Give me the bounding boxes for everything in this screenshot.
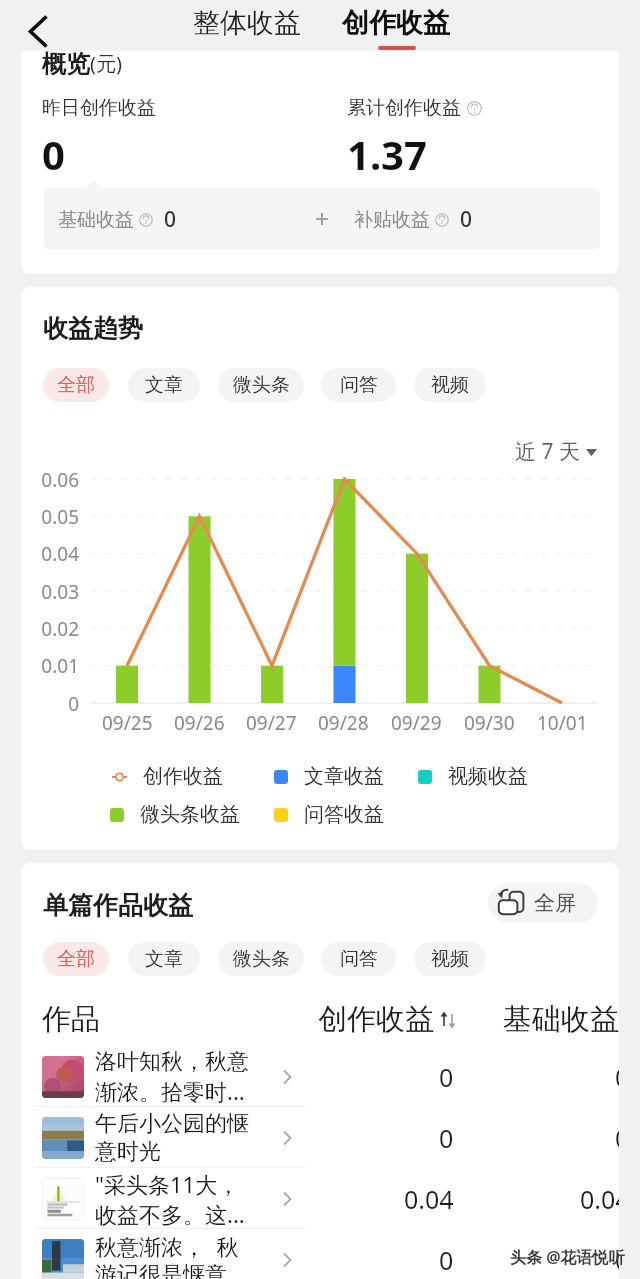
- staticText: 0.04: [580, 1182, 619, 1216]
- staticText: 创作收益: [318, 1001, 434, 1038]
- staticText: 0.05: [41, 504, 79, 528]
- staticText: 意时光: [95, 1138, 161, 1166]
- staticText: 昨日创作收益: [42, 96, 156, 120]
- staticText: 全屏: [534, 890, 576, 916]
- staticText: 头条 @花语悦听: [510, 1246, 625, 1268]
- staticText: 问答收益: [304, 802, 384, 827]
- staticText: 0: [164, 205, 177, 234]
- button[interactable]: 全部: [43, 942, 109, 976]
- button[interactable]: 文章: [128, 368, 200, 402]
- staticText: 渐浓。拾零时...: [95, 1076, 245, 1106]
- staticText: 0: [68, 691, 79, 715]
- staticText: 10/01: [537, 710, 588, 736]
- staticText: 0.03: [41, 579, 79, 603]
- staticText: 文章: [145, 373, 183, 397]
- staticText: 文章: [145, 947, 183, 971]
- staticText: 洛叶知秋，秋意: [95, 1048, 249, 1076]
- button[interactable]: 创作收益: [330, 4, 462, 42]
- staticText: 累计创作收益: [347, 96, 461, 120]
- staticText: 0: [439, 1243, 454, 1277]
- staticText: 基础收益: [58, 208, 134, 232]
- staticText: 创作收益: [342, 6, 450, 40]
- staticText: 0.04: [41, 541, 79, 565]
- staticText: 09/27: [246, 710, 297, 736]
- staticText: 0.02: [41, 616, 79, 640]
- staticText: 基础收益: [503, 1001, 619, 1038]
- staticText: 创作收益: [143, 764, 223, 789]
- staticText: 概览: [42, 51, 90, 79]
- staticText: 0: [42, 127, 65, 181]
- button[interactable]: 洛叶知秋，秋意: [21, 1046, 619, 1107]
- button[interactable]: 问答: [321, 942, 396, 976]
- staticText: 收益趋势: [43, 313, 143, 344]
- staticText: 0: [615, 1121, 619, 1155]
- staticText: 游记很是惬意: [95, 1261, 227, 1279]
- staticText: 微头条: [233, 373, 290, 397]
- button[interactable]: 秋意渐浓， 秋: [21, 1229, 619, 1279]
- staticText: 秋意渐浓， 秋: [95, 1231, 239, 1261]
- button[interactable]: 微头条: [218, 368, 304, 402]
- button[interactable]: Back: [16, 9, 60, 53]
- staticText: "采头条11大，: [95, 1169, 240, 1199]
- staticText: 全部: [57, 373, 95, 397]
- staticText: 作品: [42, 1001, 100, 1038]
- button[interactable]: 近 7 天: [511, 433, 601, 470]
- button[interactable]: 视频: [414, 942, 486, 976]
- staticText: 全部: [57, 947, 95, 971]
- staticText: 收益不多。这...: [95, 1199, 245, 1229]
- staticText: 09/25: [102, 710, 153, 736]
- staticText: 文章收益: [304, 764, 384, 789]
- staticText: 视频: [431, 947, 469, 971]
- staticText: 微头条: [233, 947, 290, 971]
- staticText: 问答: [340, 373, 378, 397]
- staticText: 视频收益: [448, 764, 528, 789]
- staticText: 近 7 天: [515, 437, 580, 466]
- staticText: 补贴收益: [354, 208, 430, 232]
- staticText: 09/28: [318, 710, 369, 736]
- button[interactable]: 午后小公园的惬: [21, 1107, 619, 1168]
- staticText: 09/29: [391, 710, 442, 736]
- staticText: 微头条收益: [140, 802, 240, 827]
- button[interactable]: "采头条11大，: [21, 1168, 619, 1229]
- staticText: 单篇作品收益: [43, 890, 193, 921]
- staticText: 问答: [340, 947, 378, 971]
- button[interactable]: 全屏: [488, 883, 598, 923]
- staticText: 0: [460, 205, 473, 234]
- staticText: 1.37: [347, 127, 427, 181]
- staticText: 0.01: [41, 653, 79, 677]
- button[interactable]: 问答: [321, 368, 396, 402]
- staticText: 0: [439, 1060, 454, 1094]
- staticText: 0.04: [404, 1182, 454, 1216]
- button[interactable]: 文章: [128, 942, 200, 976]
- staticText: 0.06: [41, 467, 79, 491]
- staticText: 0: [615, 1243, 619, 1277]
- staticText: 09/26: [174, 710, 225, 736]
- staticText: (元): [90, 51, 122, 77]
- button[interactable]: 整体收益: [181, 4, 313, 42]
- button[interactable]: 视频: [414, 368, 486, 402]
- staticText: 0: [615, 1060, 619, 1094]
- button[interactable]: 微头条: [218, 942, 304, 976]
- staticText: 09/30: [464, 710, 515, 736]
- staticText: 视频: [431, 373, 469, 397]
- staticText: 整体收益: [193, 6, 301, 40]
- staticText: 午后小公园的惬: [95, 1110, 249, 1138]
- button[interactable]: 全部: [43, 368, 109, 402]
- staticText: 0: [439, 1121, 454, 1155]
